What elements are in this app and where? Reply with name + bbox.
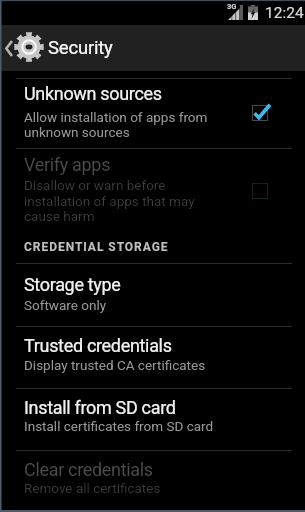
staticText: 12:24	[265, 4, 304, 22]
staticText: Software only	[24, 297, 107, 313]
button[interactable]	[0, 390, 305, 440]
staticText: Verify apps	[24, 154, 111, 175]
button[interactable]	[0, 267, 305, 319]
button[interactable]	[0, 452, 305, 502]
staticText: Remove all certificates	[24, 480, 161, 496]
staticText: installation of apps that may	[24, 193, 195, 209]
staticText: Install certificates from SD card	[24, 418, 214, 434]
button[interactable]	[0, 76, 305, 146]
staticText: Clear credentials	[24, 459, 153, 480]
button[interactable]	[0, 328, 305, 378]
button[interactable]: Checked checkbox	[243, 96, 276, 129]
button[interactable]: Navigate up	[0, 25, 137, 71]
staticText: Display trusted CA certificates	[24, 357, 206, 373]
staticText: Trusted credentials	[24, 335, 172, 356]
staticText: CREDENTIAL STORAGE	[24, 240, 169, 254]
staticText: Storage type	[24, 274, 121, 295]
staticText: unknown sources	[24, 124, 130, 140]
staticText: 3G	[227, 2, 237, 11]
button[interactable]	[0, 147, 305, 230]
staticText: Unknown sources	[24, 83, 162, 104]
staticText: Disallow or warn before	[24, 177, 166, 193]
staticText: cause harm	[24, 208, 95, 224]
staticText: Install from SD card	[24, 397, 176, 418]
staticText: Allow installation of apps from	[24, 109, 208, 125]
button[interactable]: Unchecked checkbox	[243, 174, 276, 207]
staticText: Security	[48, 37, 113, 59]
